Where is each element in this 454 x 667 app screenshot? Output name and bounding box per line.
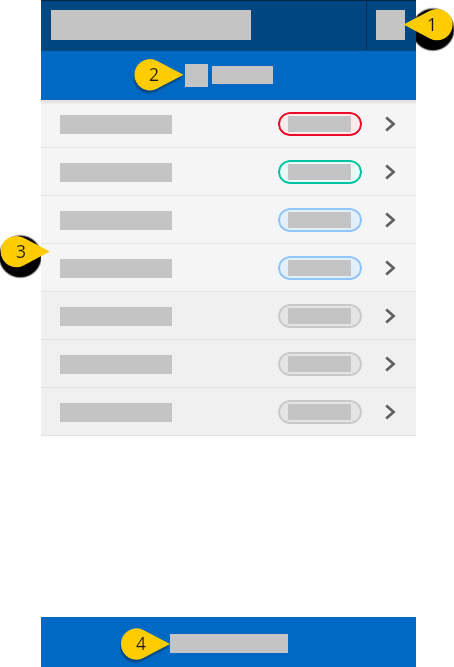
staticText: 2 [143,62,165,86]
staticText: 1 [421,12,443,36]
button[interactable] [41,292,416,340]
button[interactable] [41,388,416,436]
staticText: 3 [10,239,32,263]
staticText: 4 [130,631,152,655]
button[interactable] [41,340,416,388]
button[interactable] [41,100,416,148]
button[interactable]: More options [376,10,405,40]
button[interactable] [41,244,416,292]
button[interactable] [41,196,416,244]
button[interactable] [41,148,416,196]
